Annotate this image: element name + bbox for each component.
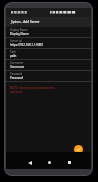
staticText: path — [10, 54, 17, 58]
staticText: Server url — [10, 39, 23, 43]
staticText: https://192.168.1.1:9000 — [10, 43, 43, 47]
staticText: Password — [10, 76, 24, 80]
button[interactable]: Save — [74, 145, 83, 154]
staticText: Display Name — [10, 28, 28, 32]
staticText: Username — [10, 61, 24, 65]
staticText: Jipicus - Add Server — [11, 20, 40, 24]
staticText: Password — [10, 72, 23, 76]
button[interactable]: Path — [6, 49, 91, 60]
staticText: Username — [10, 65, 25, 69]
button[interactable]: Username — [6, 60, 91, 71]
staticText: optional. — [10, 90, 23, 94]
button[interactable]: Recents — [62, 155, 77, 170]
button[interactable]: Home — [42, 155, 57, 170]
staticText: NOTE: Saving your password is — [10, 86, 55, 90]
staticText: Display Name — [10, 32, 29, 36]
staticText: Path — [10, 50, 16, 54]
button[interactable]: Password — [6, 71, 91, 82]
button[interactable]: Display Name — [6, 27, 91, 38]
button[interactable]: Back — [22, 155, 37, 170]
button[interactable]: Server url — [6, 38, 91, 49]
